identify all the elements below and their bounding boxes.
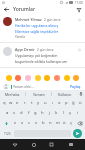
button[interactable]: Backspace [75,118,84,128]
button[interactable]: ı [49,98,56,108]
button[interactable]: Merhaba [0,90,25,98]
button[interactable]: d [18,108,25,118]
button[interactable]: Filter [75,6,82,13]
button[interactable]: Emoji reaction [64,75,70,81]
staticText: Kullanıcı [58,92,72,97]
button[interactable]: w [7,98,14,108]
button[interactable]: Mehmet Yılmaz [0,14,85,43]
button[interactable]: b [40,118,47,128]
staticText: n [49,120,52,126]
staticText: w [9,100,13,106]
staticText: j [49,110,51,116]
button[interactable]: Ayşe Demir [0,44,85,68]
button[interactable]: h [39,108,46,118]
button[interactable]: Emoji reaction [25,75,31,81]
staticText: Yorumlar [13,6,36,13]
button[interactable]: s [11,108,18,118]
button[interactable]: a [4,108,11,118]
staticText: Paylaş [70,84,81,89]
button[interactable]: p [63,98,70,108]
button[interactable]: Home [29,140,38,149]
staticText: y [37,100,40,106]
button[interactable]: Shift [1,118,11,128]
button[interactable]: z [11,118,19,128]
staticText: h [41,110,44,116]
staticText: f [28,110,30,116]
staticText: Harika bir uygulama olmuş [15,23,59,28]
button[interactable]: Kullanıcı [52,90,77,98]
button[interactable]: Like [77,47,82,52]
staticText: u [44,100,47,106]
button[interactable]: v [33,118,40,128]
button[interactable]: g [32,108,39,118]
button[interactable]: x [19,118,26,128]
staticText: z [14,120,16,126]
button[interactable]: Emoji reaction [73,75,79,81]
button[interactable]: Recent apps [47,140,56,149]
button[interactable]: Send [73,129,82,138]
staticText: Ayşe Demir [15,47,35,52]
button[interactable]: i [74,108,81,118]
button[interactable]: Paylaş [69,83,82,90]
staticText: Uygulamayı çok beğendim [15,53,58,58]
button[interactable]: Tamam [26,90,51,98]
button[interactable]: ü [77,98,84,108]
button[interactable]: t [28,98,35,108]
button[interactable]: l [60,108,67,118]
staticText: ç [70,120,73,126]
button[interactable]: r [21,98,28,108]
staticText: r [24,100,26,106]
staticText: 11:00 [75,1,83,5]
button[interactable]: Emoji reaction [54,75,60,81]
staticText: ü [79,100,82,106]
staticText: c [28,120,31,126]
staticText: i [77,110,79,116]
button[interactable]: Like [77,17,82,22]
button[interactable]: y [35,98,42,108]
staticText: x [21,120,24,126]
button[interactable]: m [54,118,61,128]
button[interactable]: k [53,108,60,118]
button[interactable]: e [14,98,21,108]
staticText: s [13,110,16,116]
staticText: e [16,100,19,106]
button[interactable]: o [56,98,63,108]
button[interactable]: Keyboard [66,140,75,149]
staticText: m [56,120,60,126]
button[interactable]: Emoji reaction [35,75,41,81]
staticText: ğ [72,100,75,106]
staticText: t [31,100,33,106]
button[interactable]: Back [10,140,19,149]
staticText: Mehmet Yılmaz [15,17,42,22]
button[interactable]: Yorum ekle... [11,84,69,89]
button[interactable]: Emoji reaction [6,75,12,81]
staticText: Ellerinize sağlık teşekkürler [15,29,59,34]
button[interactable]: ç [68,118,75,128]
button[interactable]: Emoji reaction [44,75,50,81]
button[interactable]: c [26,118,33,128]
button[interactable]: q [1,98,7,108]
staticText: Merhaba [5,92,20,97]
staticText: q [3,100,6,106]
button[interactable]: f [25,108,32,118]
staticText: bugünlerde sıklıkla kullanıyorum [15,59,67,64]
button[interactable]: Emoji reaction [15,75,21,81]
staticText: v [35,120,38,126]
button[interactable]: ö [61,118,68,128]
staticText: Yorum ekle... [13,84,34,89]
staticText: d [20,110,23,116]
button[interactable]: ğ [70,98,77,108]
staticText: b [42,120,45,126]
button[interactable]: ?123 [2,129,12,138]
staticText: k [55,110,58,116]
staticText: o [58,100,61,106]
button[interactable]: j [46,108,53,118]
button[interactable]: n [47,118,54,128]
button[interactable]: Voice input [77,90,85,98]
staticText: 2 gün önce [44,18,61,22]
button[interactable]: Back [3,6,10,13]
staticText: ?123 [4,132,11,136]
button[interactable]: u [42,98,49,108]
button[interactable]: ş [67,108,74,118]
